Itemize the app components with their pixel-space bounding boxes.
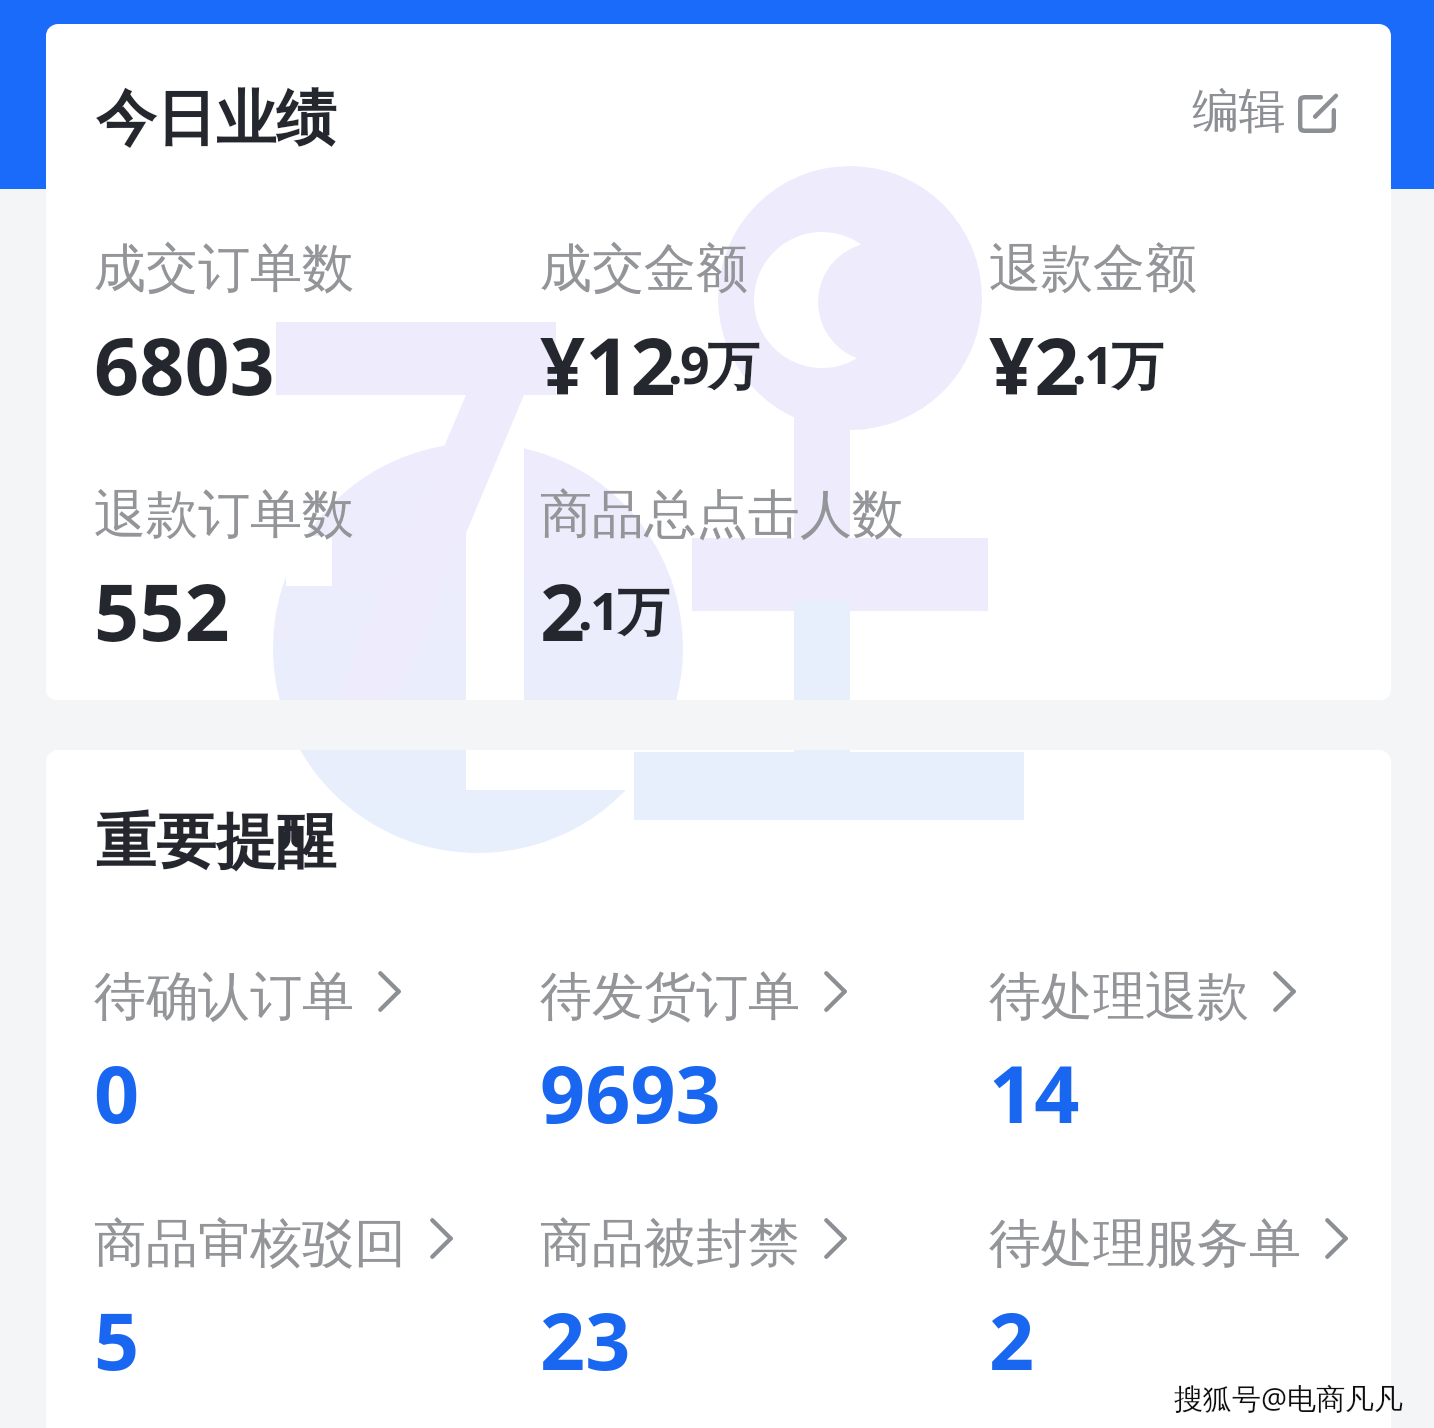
staticText: ¥12 [540,311,676,419]
staticText: 待发货订单 [540,964,800,1030]
staticText: 23 [540,1286,631,1394]
staticText: 14 [989,1039,1080,1147]
staticText: 待确认订单 [94,964,354,1030]
staticText: 6803 [94,311,275,419]
staticText: 退款订单数 [94,482,354,548]
staticText: 编辑 [1192,82,1286,141]
staticText: 今日业绩 [96,81,336,157]
button[interactable]: 商品审核驳回 [94,1203,494,1378]
staticText: 商品被封禁 [540,1211,800,1277]
staticText: .1万 [578,574,667,645]
button[interactable]: 待确认订单 [94,956,494,1131]
staticText: .1万 [1072,328,1161,399]
staticText: 重要提醒 [96,804,336,880]
other: 编辑 [1298,95,1336,133]
staticText: 待处理退款 [989,964,1249,1030]
staticText: 商品总点击人数 [540,482,904,548]
button[interactable]: 待处理服务单 [989,1203,1389,1378]
button[interactable]: 商品被封禁 [540,1203,940,1378]
staticText: 商品审核驳回 [94,1211,406,1277]
button[interactable]: 待发货订单 [540,956,940,1131]
staticText: 退款金额 [989,236,1197,302]
staticText: 5 [94,1286,140,1394]
staticText: 成交金额 [540,236,748,302]
staticText: 2 [989,1286,1035,1394]
staticText: ¥2 [989,311,1080,419]
staticText: 9693 [540,1039,721,1147]
staticText: 2 [540,557,586,665]
button[interactable]: 待处理退款 [989,956,1389,1131]
button[interactable]: 编辑 [1192,82,1336,141]
staticText: 成交订单数 [94,236,354,302]
staticText: 0 [94,1039,140,1147]
staticText: .9万 [668,328,757,399]
staticText: 待处理服务单 [989,1211,1301,1277]
staticText: 搜狐号@电商凡凡 [1174,1378,1404,1418]
staticText: 552 [94,557,230,665]
